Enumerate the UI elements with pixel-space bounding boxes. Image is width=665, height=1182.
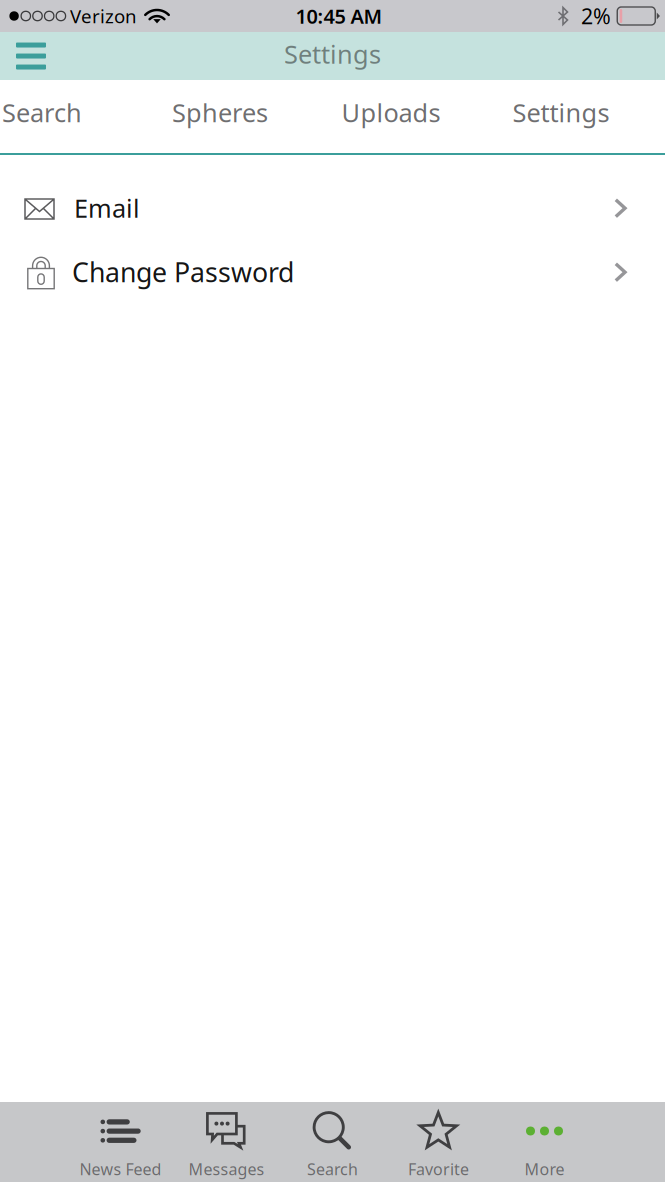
staticText: 2% bbox=[581, 2, 611, 30]
button[interactable]: News Feed bbox=[67, 1102, 173, 1182]
button[interactable]: Spheres bbox=[136, 80, 304, 153]
staticText: Verizon bbox=[70, 4, 137, 28]
staticText: News Feed bbox=[79, 1158, 161, 1180]
staticText: Spheres bbox=[172, 96, 268, 129]
staticText: More bbox=[524, 1158, 564, 1180]
button[interactable]: Email bbox=[0, 176, 665, 240]
button[interactable]: Search bbox=[279, 1102, 385, 1182]
button[interactable]: Messages bbox=[173, 1102, 279, 1182]
staticText: Change Password bbox=[72, 254, 294, 290]
button[interactable]: Favorite bbox=[385, 1102, 491, 1182]
staticText: 10:45 AM bbox=[295, 3, 382, 29]
staticText: Email bbox=[74, 191, 140, 225]
staticText: Search bbox=[307, 1158, 358, 1180]
staticText: Messages bbox=[188, 1158, 264, 1180]
staticText: Uploads bbox=[341, 96, 440, 129]
button[interactable]: Menu bbox=[0, 32, 64, 80]
staticText: Search bbox=[2, 96, 82, 129]
staticText: Settings bbox=[512, 96, 609, 129]
button[interactable]: Change Password bbox=[0, 240, 665, 304]
staticText: Favorite bbox=[408, 1158, 469, 1180]
button[interactable]: Settings bbox=[477, 80, 645, 153]
staticText: Settings bbox=[284, 37, 381, 71]
button[interactable]: Uploads bbox=[307, 80, 475, 153]
button[interactable]: More bbox=[491, 1102, 597, 1182]
button[interactable]: Search bbox=[0, 80, 126, 153]
